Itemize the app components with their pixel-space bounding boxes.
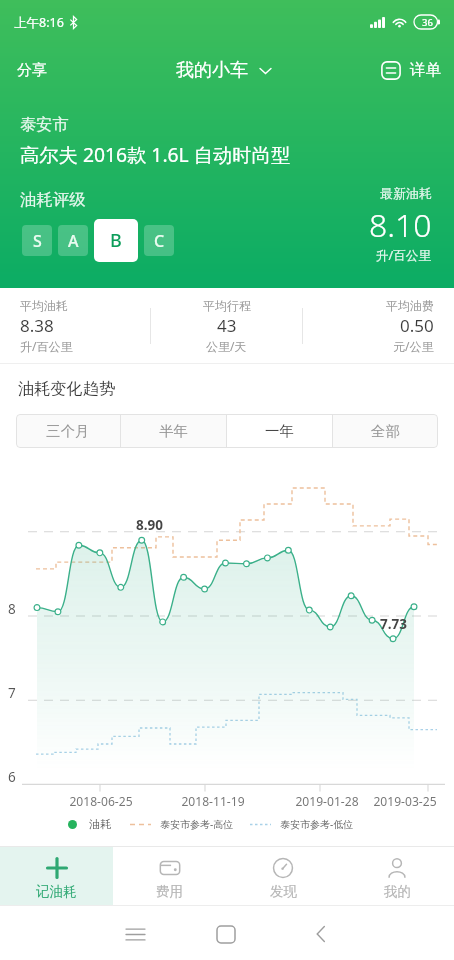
button[interactable]: C <box>144 225 174 256</box>
button[interactable]: B <box>94 219 138 262</box>
staticText: 8.90 <box>136 516 163 534</box>
staticText: B <box>110 228 122 253</box>
button[interactable]: 一年 <box>227 414 332 448</box>
staticText: 升/百公里 <box>20 338 73 354</box>
staticText: 记油耗 <box>36 883 77 900</box>
staticText: 6 <box>8 768 16 786</box>
staticText: C <box>154 230 165 252</box>
staticText: 油耗 <box>89 817 112 831</box>
staticText: 泰安市 <box>20 114 69 134</box>
staticText: 三个月 <box>46 422 90 440</box>
staticText: 8.38 <box>20 314 54 337</box>
button[interactable]: 全部 <box>333 414 438 448</box>
staticText: 2018-06-25 <box>69 793 133 809</box>
staticText: 高尔夫 2016款 1.6L 自动时尚型 <box>20 141 291 167</box>
staticText: 平均行程 <box>203 298 251 313</box>
staticText: 平均油费 <box>386 298 434 313</box>
staticText: 最新油耗 <box>380 186 432 202</box>
staticText: 上午8:16 <box>14 14 64 31</box>
staticText: 平均油耗 <box>20 298 68 313</box>
staticText: 36 <box>422 16 433 29</box>
staticText: 我的小车 <box>176 59 248 82</box>
staticText: 油耗评级 <box>20 189 86 210</box>
button[interactable]: 半年 <box>121 414 226 448</box>
staticText: 升/百公里 <box>376 247 432 264</box>
staticText: 发现 <box>270 883 297 900</box>
button[interactable]: S <box>22 225 52 256</box>
button[interactable]: 三个月 <box>16 414 120 448</box>
button[interactable]: 发现 <box>226 847 340 905</box>
staticText: 详单 <box>410 60 441 80</box>
staticText: 泰安市参考-低位 <box>280 817 354 831</box>
staticText: 我的 <box>384 883 411 900</box>
button[interactable]: 分享 <box>0 49 61 92</box>
button[interactable]: 详单 <box>371 52 454 88</box>
button[interactable]: Home <box>206 914 246 954</box>
staticText: 8.10 <box>369 203 432 247</box>
staticText: 公里/天 <box>206 338 247 354</box>
staticText: 0.50 <box>400 314 434 337</box>
button[interactable]: 记油耗 <box>0 847 113 905</box>
button[interactable]: Recents <box>115 914 155 954</box>
staticText: 2019-03-25 <box>373 793 437 809</box>
staticText: 一年 <box>265 422 294 440</box>
button[interactable]: 我的小车 <box>166 51 282 90</box>
staticText: 7.73 <box>380 615 407 633</box>
staticText: 全部 <box>371 422 400 440</box>
button[interactable]: 费用 <box>113 847 226 905</box>
staticText: 2019-01-28 <box>295 793 359 809</box>
staticText: 8 <box>8 600 16 618</box>
button[interactable]: A <box>58 225 88 256</box>
button[interactable]: Back <box>300 914 340 954</box>
staticText: 半年 <box>159 422 188 440</box>
staticText: S <box>33 230 42 252</box>
staticText: 分享 <box>17 61 47 80</box>
staticText: 泰安市参考-高位 <box>160 817 234 831</box>
staticText: 43 <box>217 314 237 337</box>
staticText: 元/公里 <box>393 338 434 354</box>
staticText: 7 <box>8 684 16 702</box>
staticText: 油耗变化趋势 <box>18 378 116 398</box>
staticText: 费用 <box>156 883 183 900</box>
button[interactable]: 我的 <box>340 847 454 905</box>
staticText: 2018-11-19 <box>181 793 245 809</box>
staticText: A <box>68 230 79 252</box>
